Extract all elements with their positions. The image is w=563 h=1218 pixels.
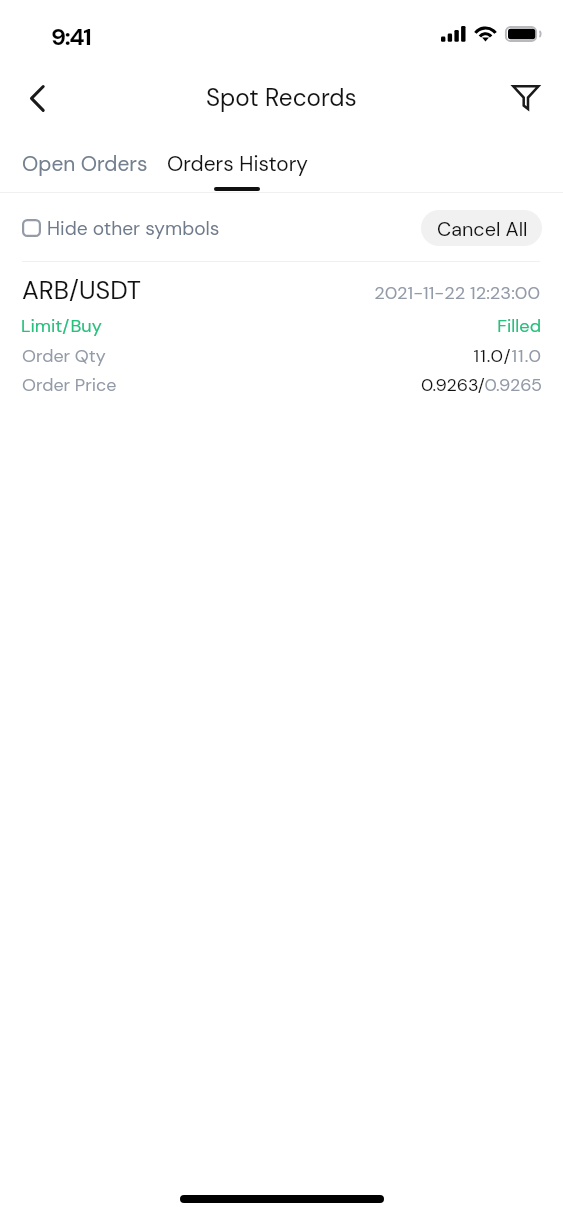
button[interactable]: ARB/USDT xyxy=(0,266,563,401)
staticText: Spot Records xyxy=(206,82,357,114)
staticText: Filled xyxy=(381,314,541,338)
staticText: 2021-11-22 12:23:00 xyxy=(280,281,540,305)
staticText: Cancel All xyxy=(437,216,528,242)
button[interactable]: Hide other symbols xyxy=(18,206,226,250)
button[interactable]: Back xyxy=(6,68,68,130)
staticText: ARB/USDT xyxy=(22,274,141,307)
staticText: Orders History xyxy=(167,150,308,177)
button[interactable]: Orders History xyxy=(160,139,315,185)
staticText: Open Orders xyxy=(22,150,148,177)
staticText: Hide other symbols xyxy=(47,216,220,241)
button[interactable]: Open Orders xyxy=(14,139,153,185)
staticText: 11.0/11.0 xyxy=(242,344,542,368)
staticText: 0.9263/0.9265 xyxy=(242,373,542,396)
staticText: Order Qty xyxy=(22,344,106,367)
button[interactable]: Filter xyxy=(495,68,557,130)
staticText: 9:41 xyxy=(51,21,91,52)
button[interactable]: Cancel All xyxy=(421,210,542,246)
staticText: Limit/Buy xyxy=(21,314,102,338)
staticText: Order Price xyxy=(22,373,117,396)
